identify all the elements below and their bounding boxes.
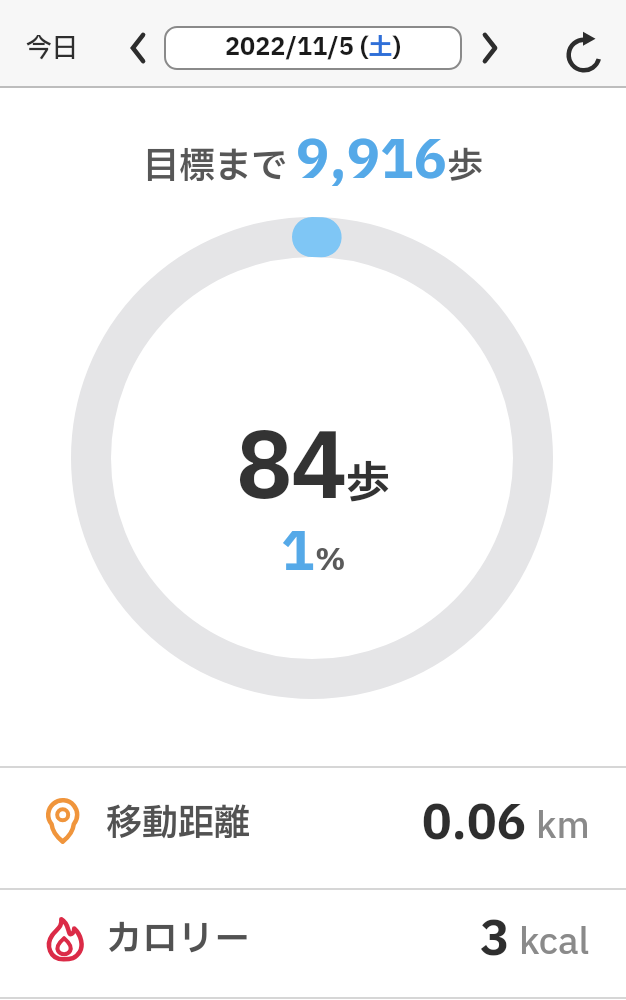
button[interactable]: カロリー xyxy=(0,890,626,997)
staticText: カロリー xyxy=(106,913,251,967)
staticText: 0.06 xyxy=(422,789,527,859)
button[interactable] xyxy=(122,28,154,68)
staticText: 2022/11/5 (土) xyxy=(225,30,401,66)
staticText: 今日 xyxy=(26,29,79,68)
staticText: 84 xyxy=(236,403,346,538)
staticText: 目標まで xyxy=(143,140,296,194)
staticText: km xyxy=(527,800,590,854)
staticText: 移動距離 xyxy=(106,797,251,851)
button[interactable] xyxy=(562,26,606,70)
staticText: 歩 xyxy=(346,451,390,517)
staticText: 9,916 xyxy=(296,122,447,201)
staticText: kcal xyxy=(510,916,590,970)
staticText: % xyxy=(315,538,346,583)
button[interactable] xyxy=(474,28,506,68)
button[interactable]: 2022/11/5 (土) xyxy=(164,26,462,70)
staticText: 3 xyxy=(480,905,510,975)
button[interactable]: 移動距離 xyxy=(0,768,626,888)
button[interactable]: 今日 xyxy=(26,29,79,68)
staticText: 1 xyxy=(281,514,315,593)
staticText: 歩 xyxy=(447,140,484,194)
